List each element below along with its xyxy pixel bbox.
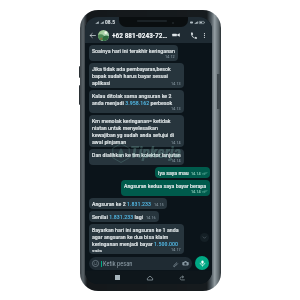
button[interactable]: Contact photo	[98, 30, 109, 41]
staticText: Krn menolak keringanan= ketidak niatan u…	[92, 117, 181, 145]
button[interactable]: More options	[200, 31, 209, 40]
staticText: Angsuran kedua saya bayar berapa	[124, 182, 207, 189]
button[interactable]: Ketik pesan	[89, 257, 192, 270]
button[interactable]: Record voice message	[195, 256, 209, 270]
button[interactable]: Angsuran kedua saya bayar berapa	[121, 180, 210, 196]
button[interactable]: Bayarkan hari ini angsuran ke 1 anda aga…	[89, 224, 184, 254]
button[interactable]: Recent apps	[112, 272, 123, 283]
staticText: Iya saya mau 00.00 XX	[158, 169, 207, 176]
staticText: Angsuran ke 2 1.831.233 00.00	[92, 200, 164, 207]
staticText: Ketik pesan	[103, 260, 133, 268]
staticText: 14.17	[171, 247, 181, 252]
staticText: Kalau ditolak sama angsuran ke 2 anda me…	[92, 92, 181, 106]
staticText: Senilai 1.831.233 lagi 00.00	[92, 213, 156, 220]
button[interactable]: Jika tidak ada pembayaran,besok bapak su…	[89, 63, 184, 88]
button[interactable]: Iya saya mau 00.00 XX	[155, 167, 210, 178]
staticText: 14.14	[171, 140, 181, 145]
staticText: 14.14	[191, 171, 201, 176]
staticText: 14.15	[154, 202, 164, 207]
button[interactable]: Krn menolak keringanan= ketidak niatan u…	[89, 115, 184, 147]
button[interactable]: Back	[87, 30, 97, 40]
staticText: 14.12	[165, 54, 175, 59]
staticText: Dan dialihkan ke tim kolektor lanjutan	[92, 151, 181, 158]
button[interactable]: Senilai 1.831.233 lagi 00.00	[89, 211, 159, 222]
staticText: Jika tidak ada pembayaran,besok bapak su…	[92, 65, 181, 86]
button[interactable]: Home	[144, 272, 155, 283]
button[interactable]: Soalnya hari ini terakhir keringanan	[89, 45, 178, 61]
staticText: Tipkerja	[130, 143, 181, 162]
staticText: 14.14	[171, 158, 181, 163]
staticText: 14.13	[171, 81, 181, 86]
staticText: Soalnya hari ini terakhir keringanan	[92, 47, 175, 54]
staticText: 08.5	[105, 19, 115, 26]
button[interactable]: Voice call	[188, 30, 198, 40]
staticText: Bayarkan hari ini angsuran ke 1 anda aga…	[92, 226, 181, 252]
staticText: 14.13	[171, 106, 181, 111]
button[interactable]: Dan dialihkan ke tim kolektor lanjutan	[89, 149, 184, 165]
button[interactable]: Back	[176, 272, 187, 283]
staticText: 14.16	[146, 215, 156, 220]
button[interactable]: Angsuran ke 2 1.831.233 00.00	[89, 198, 167, 209]
button[interactable]: Scroll to bottom	[200, 233, 209, 242]
staticText: 14.14	[191, 189, 201, 194]
button[interactable]: Kalau ditolak sama angsuran ke 2 anda me…	[89, 90, 184, 113]
staticText: +62 881-0243-72…	[112, 31, 168, 40]
button[interactable]: Video call	[171, 30, 181, 40]
